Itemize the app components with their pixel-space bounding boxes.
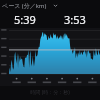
other: Change metric (52, 2, 59, 9)
button[interactable]: 3:53 (50, 11, 100, 28)
staticText: 時間 (時：分：秒) (30, 89, 70, 96)
staticText: 3:53 (64, 12, 86, 27)
button[interactable] (0, 28, 100, 86)
staticText: 5:39 (14, 12, 36, 27)
staticText: ペース (分／km) (2, 2, 47, 10)
button[interactable]: ペース (分／km) (0, 0, 100, 11)
button[interactable]: 5:39 (0, 11, 50, 28)
